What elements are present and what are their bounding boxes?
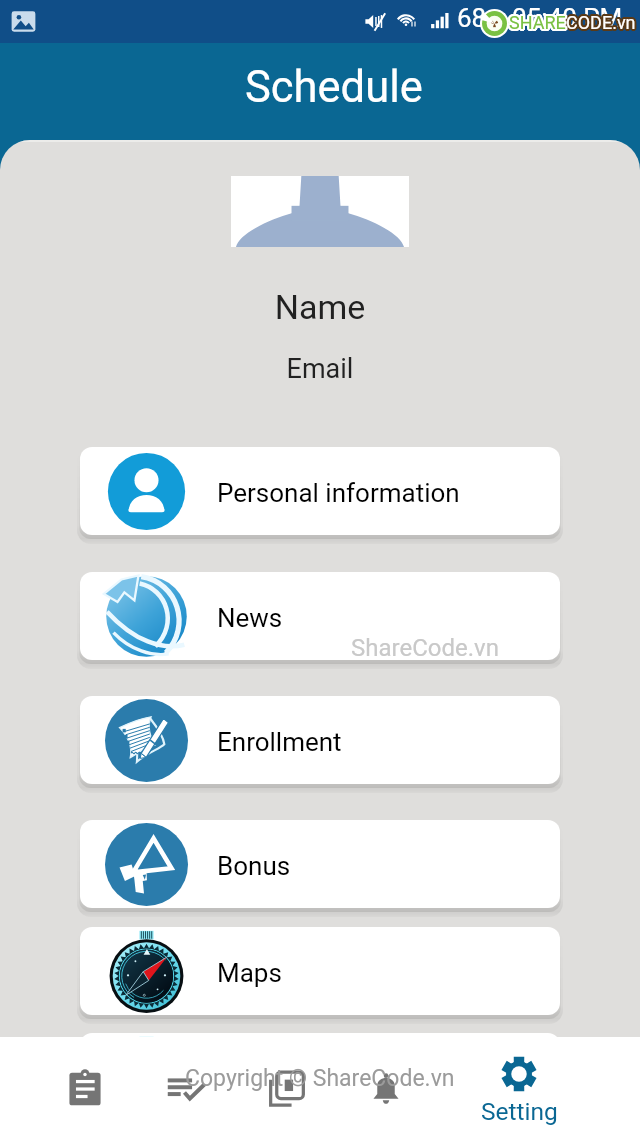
staticText: CODE.vn [566,10,636,31]
staticText: SHARE [508,14,565,35]
staticText: CODE.vn [567,11,637,32]
staticText: CODE.vn [567,12,637,33]
staticText: Personal information [217,478,460,508]
staticText: CODE.vn [565,14,635,35]
staticText: News [217,603,283,633]
staticText: SHARE [508,11,565,32]
staticText: CODE.vn [564,11,634,32]
button[interactable]: Documents [237,1037,337,1138]
staticText: SHARE [511,13,568,34]
button[interactable]: Maps [80,927,560,1015]
staticText: Schedule [245,62,423,113]
staticText: Setting [481,1097,558,1126]
staticText: CODE.vn [568,11,638,32]
button[interactable]: Setting [438,1037,600,1138]
staticText: Report [217,1064,295,1094]
button[interactable]: Enrollment [80,696,560,784]
button[interactable]: Personal information [80,447,560,535]
staticText: SHARE [509,12,566,33]
staticText: SHARE [509,10,566,31]
staticText: SHARE [507,12,564,33]
staticText: CODE.vn [565,11,635,32]
button[interactable]: Report [80,1033,560,1121]
staticText: ShareCode.vn [351,634,499,662]
staticText: SHARE [507,13,564,34]
staticText: CODE.vn [565,13,635,34]
staticText: SHARE [509,11,566,32]
staticText: CODE.vn [566,12,636,33]
button[interactable]: Completed tasks [136,1037,236,1138]
staticText: SHARE [510,14,567,35]
staticText: SHARE [511,12,568,33]
staticText: CODE.vn [567,14,637,35]
button[interactable]: News [80,572,560,660]
staticText: CODE.vn [564,13,634,34]
staticText: SHARE [511,11,568,32]
staticText: CODE.vn [568,12,638,33]
staticText: 68 [457,3,487,33]
staticText: Maps [217,958,282,988]
button[interactable]: Schedule list [35,1037,135,1138]
button[interactable]: Bonus [80,820,560,908]
staticText: SHARE [508,12,565,33]
staticText: CODE.vn [565,10,635,31]
staticText: SHARE [510,12,567,33]
staticText: CODE.vn [564,12,634,33]
staticText: Enrollment [217,727,342,757]
staticText: SHARE [509,12,566,33]
staticText: Name [0,287,640,327]
staticText: CODE.vn [566,13,636,34]
staticText: CODE.vn [566,11,636,32]
staticText: CODE.vn [567,13,637,34]
staticText: SHARE [508,13,565,34]
staticText: CODE.vn [566,12,636,33]
staticText: SHARE [510,11,567,32]
staticText: SHARE [507,11,564,32]
staticText: SHARE [509,14,566,35]
staticText: SHARE [508,10,565,31]
staticText: CODE.vn [566,14,636,35]
staticText: 05:40 PM [512,3,623,33]
staticText: SHARE [510,13,567,34]
button[interactable]: Notifications [336,1037,436,1138]
staticText: Copyright © ShareCode.vn [185,1065,455,1092]
staticText: SHARE [509,13,566,34]
staticText: Bonus [217,851,291,881]
staticText: SHARE [510,10,567,31]
staticText: CODE.vn [568,13,638,34]
staticText: CODE.vn [567,10,637,31]
staticText: CODE.vn [565,12,635,33]
staticText: Email [0,353,640,385]
